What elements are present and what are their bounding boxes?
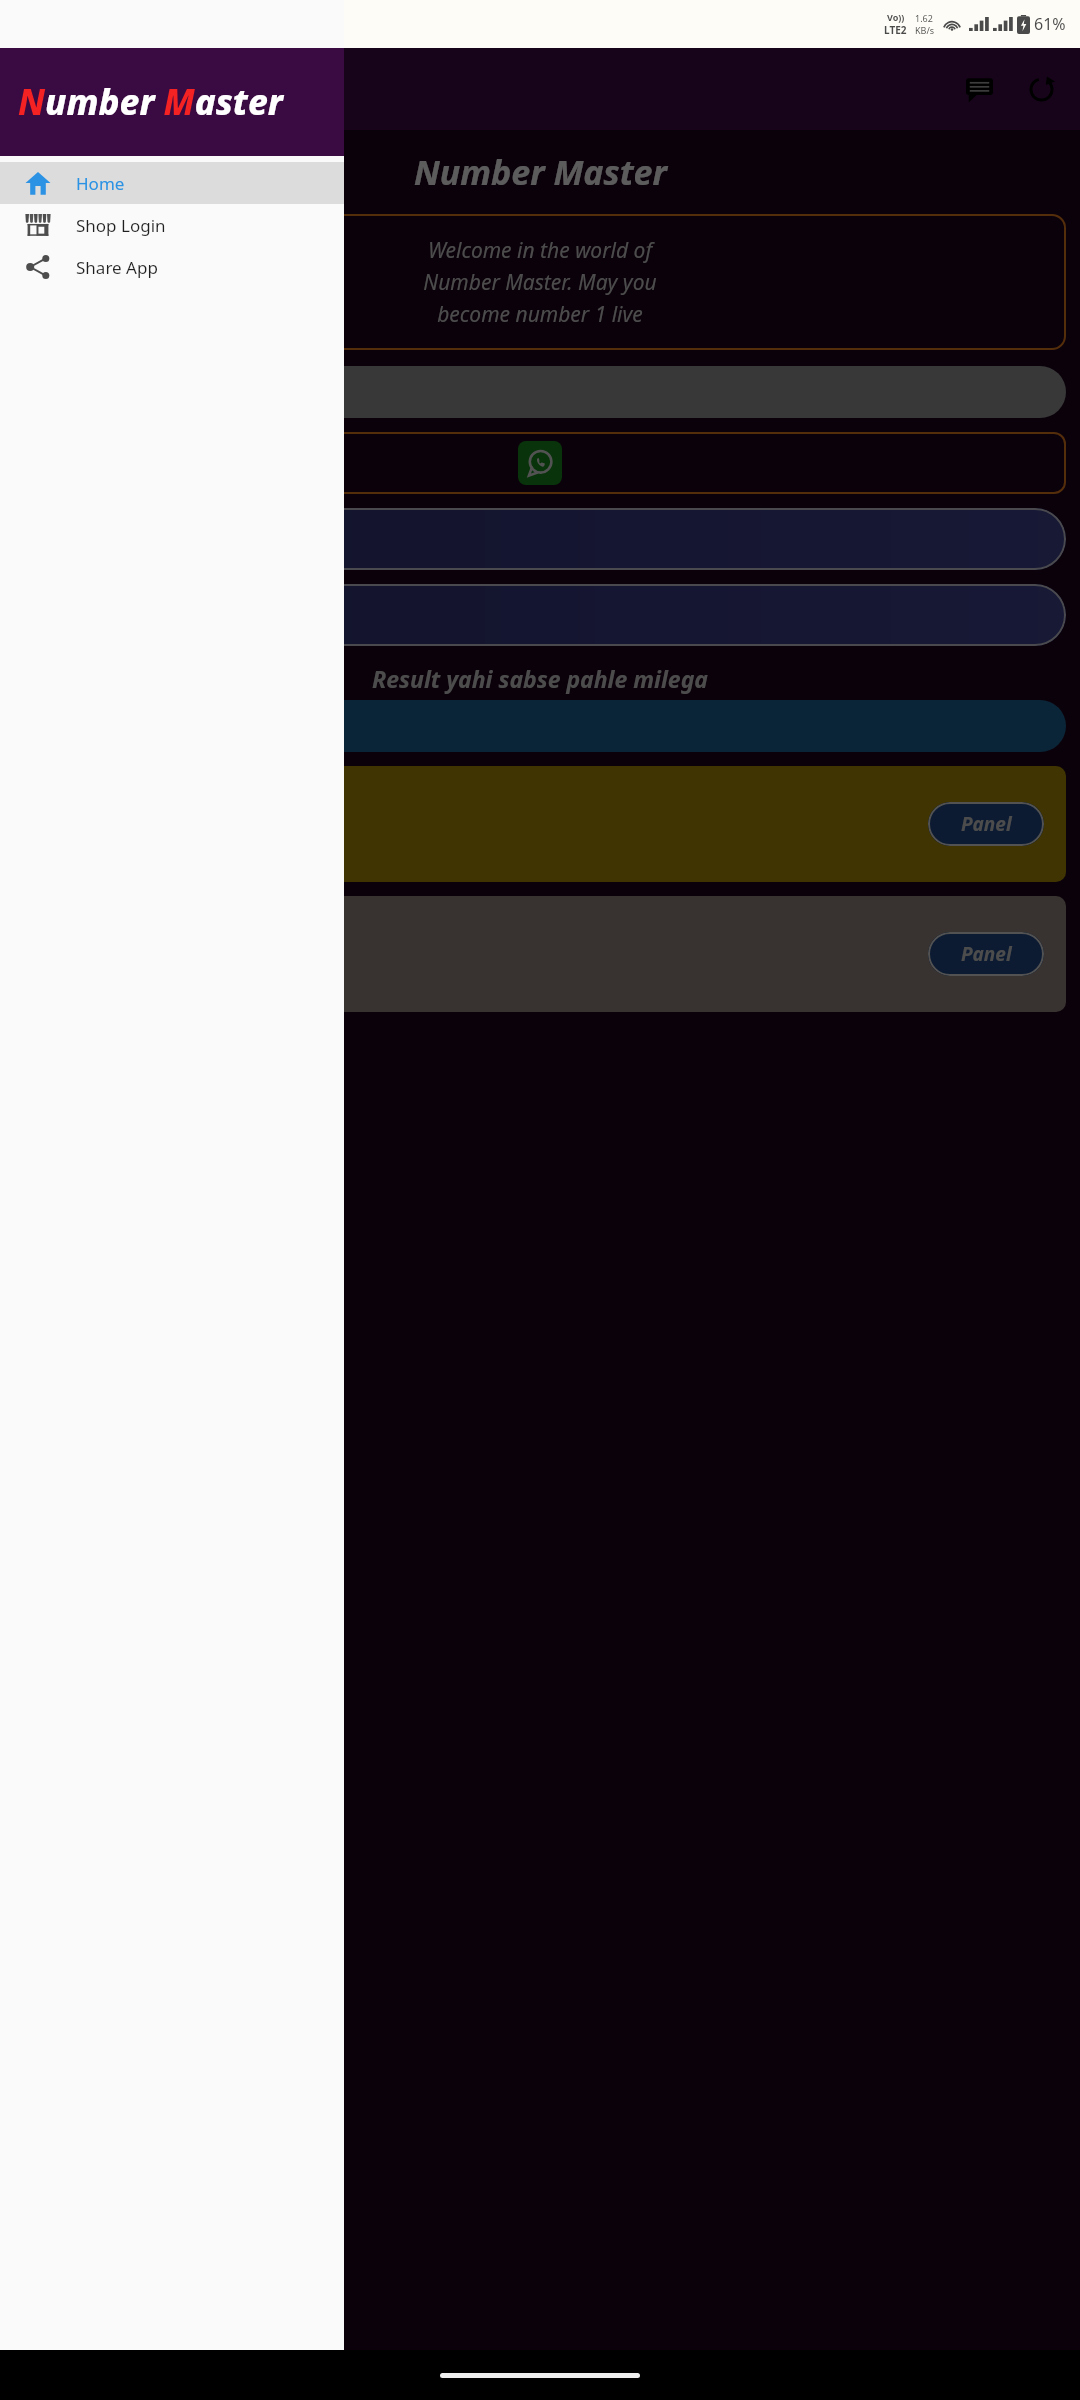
- button[interactable]: Panel: [928, 802, 1044, 846]
- staticText: Number Master: [18, 78, 283, 126]
- staticText: LTE2: [884, 23, 907, 37]
- button[interactable]: Share App: [0, 246, 344, 288]
- staticText: Share App: [76, 256, 158, 279]
- button[interactable]: [14, 700, 1066, 752]
- staticText: Shop Login: [76, 214, 166, 237]
- staticText: KB/s: [915, 24, 935, 36]
- button[interactable]: Shop Login: [0, 204, 344, 246]
- staticText: 61%: [1034, 13, 1066, 35]
- button[interactable]: [14, 366, 1066, 418]
- button[interactable]: [14, 508, 1066, 570]
- staticText: Panel: [961, 811, 1012, 837]
- button[interactable]: Panel: [14, 766, 1066, 882]
- button[interactable]: Welcome in the world of Number Master. M…: [14, 214, 1066, 350]
- button[interactable]: Refresh: [1018, 66, 1064, 112]
- button[interactable]: [14, 584, 1066, 646]
- button[interactable]: Panel: [14, 896, 1066, 1012]
- staticText: Vo)): [887, 11, 905, 23]
- button[interactable]: Home: [0, 162, 344, 204]
- staticText: Result yahi sabse pahle milega: [372, 663, 708, 694]
- button[interactable]: Messages: [956, 66, 1002, 112]
- staticText: Welcome in the world of Number Master. M…: [423, 236, 657, 328]
- staticText: Home: [76, 172, 125, 195]
- staticText: 1.62: [915, 12, 933, 24]
- staticText: Number Master: [414, 149, 667, 195]
- staticText: Panel: [961, 941, 1012, 967]
- button[interactable]: Panel: [928, 932, 1044, 976]
- button[interactable]: WhatsApp: [14, 432, 1066, 494]
